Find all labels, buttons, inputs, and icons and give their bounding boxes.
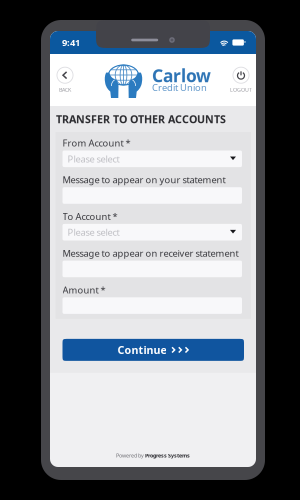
staticText: Continue (117, 343, 166, 357)
staticText: Please select (67, 226, 119, 238)
staticText: BACK (59, 86, 71, 93)
staticText: Message to appear on your statement (62, 173, 225, 186)
button[interactable]: Please select (62, 224, 242, 240)
staticText: Powered by (116, 452, 145, 459)
staticText: Progress Systems (145, 452, 190, 459)
staticText: Carlow (152, 64, 211, 87)
staticText: To Account * (62, 210, 117, 223)
staticText: Message to appear on receiver statement (62, 247, 238, 259)
staticText: Amount * (62, 284, 105, 296)
staticText: 9:41 (62, 36, 80, 49)
staticText: TRANSFER TO OTHER ACCOUNTS (56, 112, 226, 126)
button[interactable]: Please select (62, 150, 242, 167)
button[interactable]: Continue (62, 339, 244, 361)
staticText: LOGOUT (230, 86, 252, 93)
staticText: Please select (67, 153, 119, 165)
button[interactable]: Logout (226, 64, 256, 96)
staticText: From Account * (62, 137, 130, 149)
staticText: Credit Union (152, 81, 207, 94)
button[interactable]: Back (50, 64, 80, 96)
